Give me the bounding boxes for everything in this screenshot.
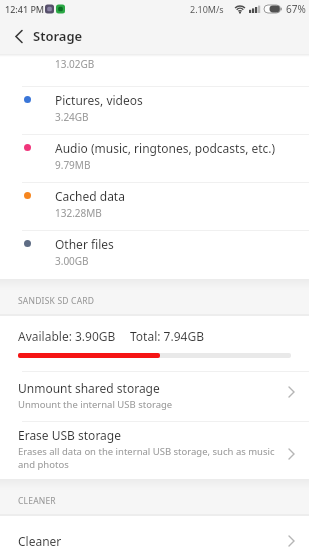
button[interactable]: Pictures, videos	[0, 87, 309, 134]
staticText: 9.79MB	[55, 158, 91, 172]
staticText: Erase USB storage	[18, 427, 121, 443]
button[interactable]: 13.02GB	[0, 57, 309, 86]
staticText: Pictures, videos	[55, 92, 143, 108]
staticText: Total: 7.94GB	[130, 328, 204, 344]
button[interactable]: Audio (music, ringtones, podcasts, etc.)	[0, 135, 309, 182]
button[interactable]: Cached data	[0, 183, 309, 230]
button[interactable]: Unmount shared storage	[0, 372, 309, 421]
staticText: 2.10M/s	[190, 3, 224, 15]
staticText: 67%	[286, 2, 306, 16]
staticText: Storage	[33, 27, 83, 45]
staticText: and photos	[18, 458, 69, 471]
staticText: Unmount the internal USB storage	[18, 398, 173, 411]
staticText: Available: 3.90GB	[18, 328, 116, 344]
staticText: 3.00GB	[55, 254, 89, 268]
staticText: Audio (music, ringtones, podcasts, etc.)	[55, 140, 276, 156]
button[interactable]	[8, 25, 30, 47]
staticText: Unmount shared storage	[18, 380, 160, 396]
staticText: 13.02GB	[55, 57, 95, 71]
staticText: Cleaner	[18, 533, 62, 549]
staticText: Erases all data on the internal USB stor…	[18, 445, 275, 458]
staticText: SANDISK SD CARD	[18, 295, 95, 307]
staticText: Other files	[55, 236, 114, 252]
staticText: 132.28MB	[55, 206, 102, 220]
staticText: CLEANER	[18, 495, 56, 507]
button[interactable]: Cleaner	[0, 516, 309, 550]
button[interactable]: Other files	[0, 231, 309, 279]
staticText: 12:41 PM	[5, 3, 45, 15]
staticText: Cached data	[55, 188, 125, 204]
button[interactable]: Erase USB storage	[0, 422, 309, 479]
staticText: 3.24GB	[55, 110, 89, 124]
